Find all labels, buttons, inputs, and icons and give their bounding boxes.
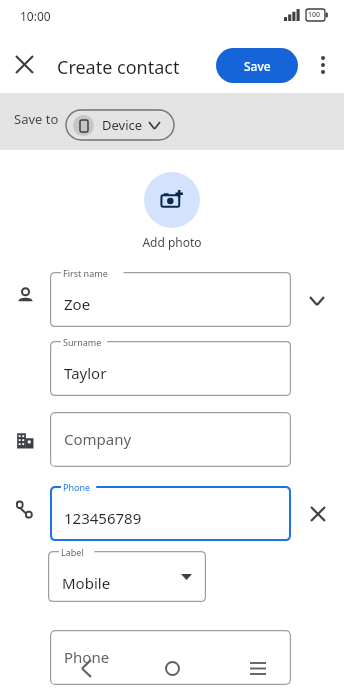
staticText: Company (64, 429, 132, 449)
button[interactable]: First name (50, 272, 291, 327)
staticText: Zoe (64, 294, 91, 314)
staticText: Add photo (142, 234, 202, 250)
button[interactable]: Add photo (144, 172, 200, 228)
button[interactable]: Phone (50, 486, 291, 541)
button[interactable]: Close (0, 40, 48, 88)
staticText: 10:00 (20, 8, 51, 24)
button[interactable]: Phone (50, 630, 291, 685)
staticText: Save (244, 58, 271, 74)
button[interactable]: Expand name fields (300, 284, 334, 318)
button[interactable]: Home (152, 648, 192, 688)
button[interactable]: Surname (50, 341, 291, 396)
staticText: Surname (63, 336, 102, 348)
button[interactable]: Back (66, 648, 106, 688)
button[interactable]: Remove phone (301, 497, 335, 531)
button[interactable]: More options (302, 42, 344, 88)
staticText: Label (61, 546, 84, 558)
button[interactable]: Recents (238, 648, 278, 688)
staticText: Phone (64, 647, 110, 667)
staticText: Save to (14, 110, 59, 128)
staticText: Mobile (62, 573, 111, 593)
staticText: 123456789 (64, 508, 142, 528)
staticText: 100 (308, 10, 321, 20)
staticText: Create contact (57, 55, 180, 80)
button[interactable]: Label (48, 551, 206, 602)
staticText: Taylor (64, 363, 107, 383)
button[interactable]: Save (216, 48, 298, 83)
staticText: Phone (63, 481, 91, 493)
button[interactable]: Company (50, 412, 291, 467)
staticText: First name (63, 267, 108, 279)
button[interactable]: Device (66, 110, 174, 140)
staticText: Device (102, 116, 143, 134)
